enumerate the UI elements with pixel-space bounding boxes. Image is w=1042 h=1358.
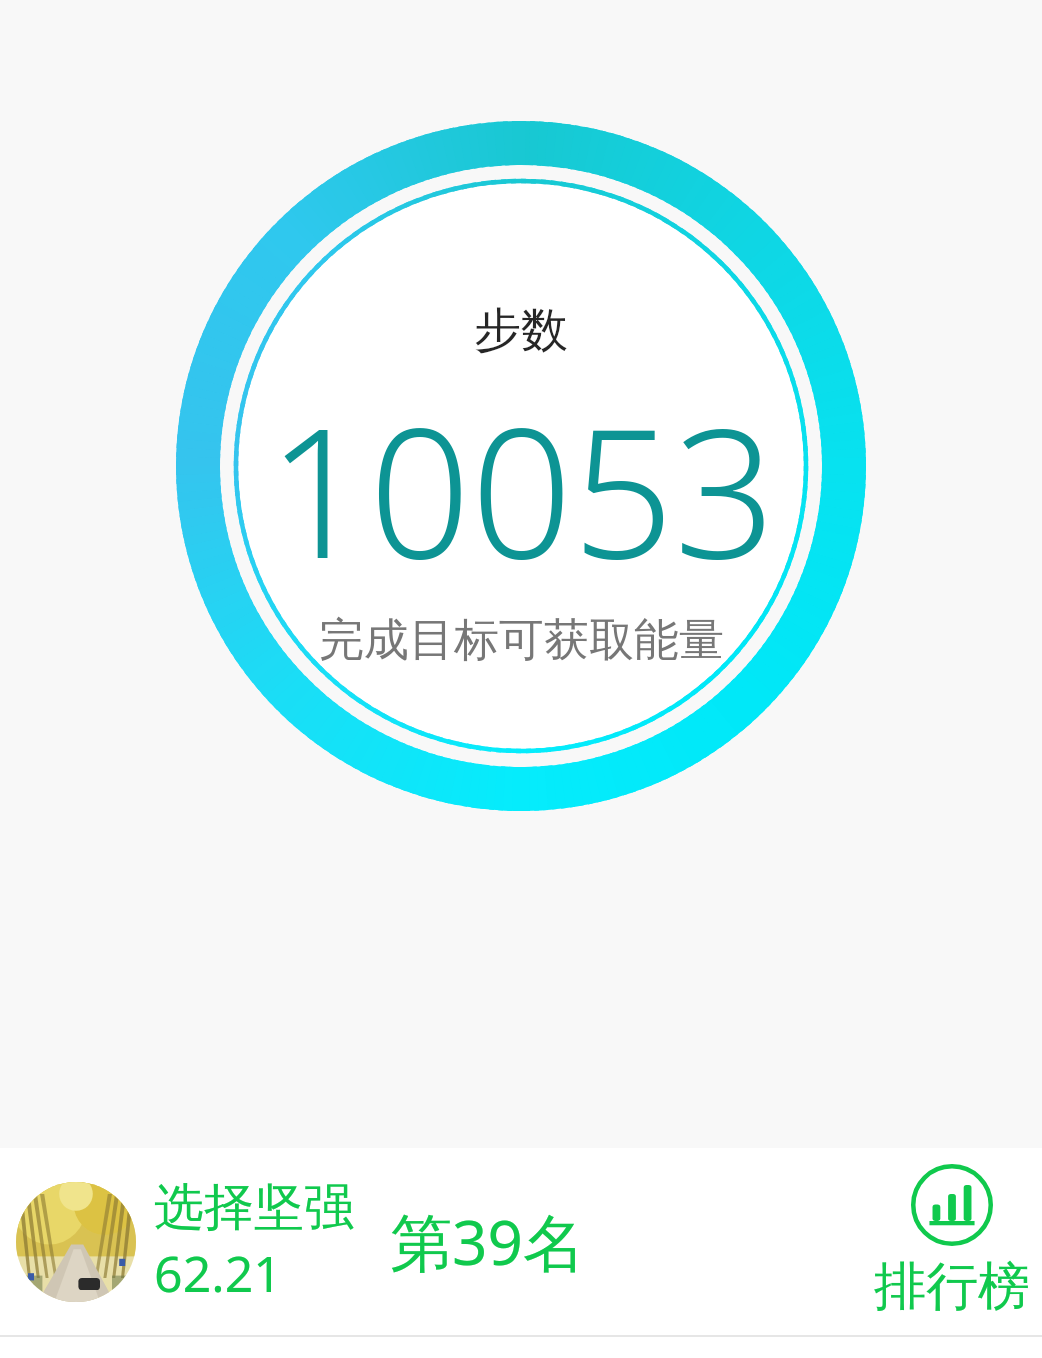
other: 排行榜 (911, 1164, 993, 1246)
staticText: 62.21 (154, 1239, 282, 1307)
button[interactable]: 步数 (176, 121, 866, 811)
staticText: 选择坚强 (154, 1176, 354, 1239)
staticText: 排行榜 (874, 1254, 1030, 1320)
button[interactable]: 排行榜 (862, 1148, 1042, 1335)
staticText: 第39名 (390, 1199, 585, 1284)
button[interactable]: 选择坚强 (16, 1148, 862, 1335)
staticText: 步数 (474, 301, 568, 360)
staticText: 完成目标可获取能量 (319, 612, 724, 669)
staticText: 10053 (267, 368, 776, 610)
